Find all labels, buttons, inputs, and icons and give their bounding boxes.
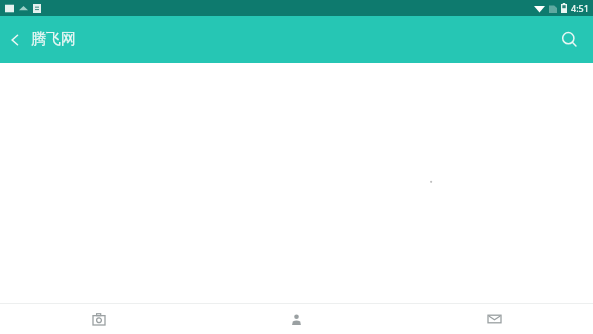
button[interactable]: Back bbox=[0, 16, 88, 63]
button[interactable]: Profile bbox=[197, 304, 395, 334]
staticText: 4:51 bbox=[571, 2, 589, 14]
button[interactable]: Search bbox=[546, 16, 593, 63]
button[interactable]: Messages bbox=[395, 304, 593, 334]
button[interactable]: Camera bbox=[0, 304, 197, 334]
staticText: 腾飞网 bbox=[31, 30, 76, 49]
